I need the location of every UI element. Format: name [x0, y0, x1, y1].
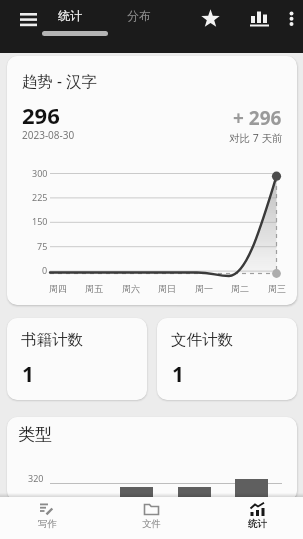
staticText: 周三 — [268, 283, 286, 294]
staticText: 统计 — [58, 8, 82, 23]
button[interactable]: 统计 — [42, 0, 108, 53]
staticText: 1 — [172, 360, 185, 389]
button[interactable]: 趋势 - 汉字 — [7, 56, 297, 305]
staticText: 225 — [32, 191, 48, 203]
staticText: + 296 — [233, 105, 282, 131]
staticText: 周一 — [195, 283, 213, 294]
staticText: 150 — [32, 215, 48, 227]
button[interactable]: 文件计数 — [157, 318, 297, 400]
staticText: 统计 — [248, 518, 267, 530]
button[interactable]: 写作 — [0, 497, 100, 539]
button[interactable]: 文件 — [101, 497, 202, 539]
button[interactable] — [12, 5, 46, 33]
staticText: 文件计数 — [171, 330, 233, 350]
button[interactable] — [245, 5, 274, 34]
staticText: 300 — [32, 167, 48, 179]
button[interactable]: 书籍计数 — [7, 318, 147, 400]
staticText: 周日 — [158, 283, 176, 294]
button[interactable] — [196, 5, 225, 34]
staticText: 周四 — [49, 283, 67, 294]
staticText: 写作 — [38, 518, 57, 530]
button[interactable] — [280, 5, 303, 34]
staticText: 2023-08-30 — [22, 128, 75, 142]
button[interactable]: 统计 — [202, 497, 303, 539]
staticText: 周五 — [85, 283, 103, 294]
staticText: 对比 7 天前 — [229, 131, 283, 145]
staticText: 类型 — [18, 424, 52, 445]
staticText: 320 — [28, 472, 44, 484]
staticText: 书籍计数 — [21, 330, 83, 350]
staticText: 分布 — [127, 8, 151, 23]
staticText: 1 — [22, 360, 35, 389]
staticText: 0 — [42, 264, 48, 276]
staticText: 文件 — [142, 518, 161, 530]
staticText: 75 — [37, 240, 48, 252]
staticText: 296 — [22, 100, 60, 130]
button[interactable]: 分布 — [108, 0, 170, 53]
staticText: 周六 — [122, 283, 140, 294]
button[interactable]: 类型 — [7, 417, 297, 501]
staticText: 周二 — [231, 283, 249, 294]
staticText: 趋势 - 汉字 — [22, 70, 98, 91]
